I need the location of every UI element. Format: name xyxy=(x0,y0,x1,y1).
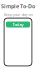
staticText: Keep your day on track xyxy=(3,12,32,22)
staticText: Simple To-Do xyxy=(1,3,35,10)
staticText: Today xyxy=(12,22,23,27)
